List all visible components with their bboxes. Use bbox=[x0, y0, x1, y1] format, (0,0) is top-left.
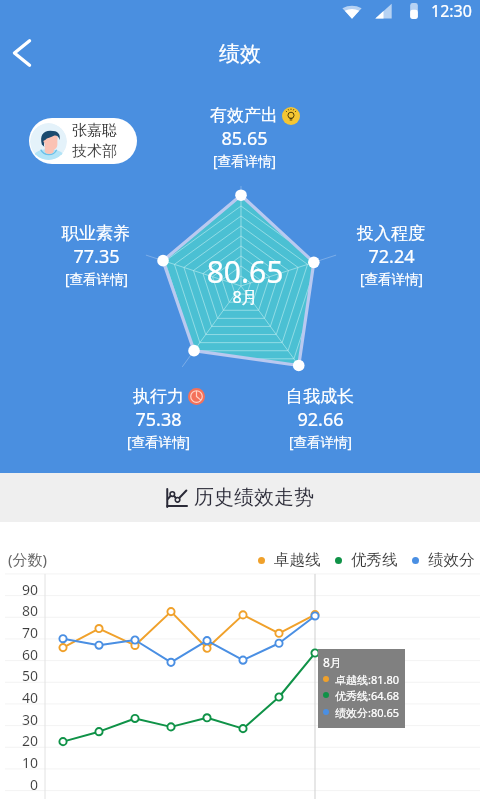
staticText: 自我成长 bbox=[286, 386, 354, 407]
staticText: 75.38 bbox=[135, 407, 182, 432]
button[interactable]: 卓越线 bbox=[258, 550, 321, 570]
staticText: 优秀线 bbox=[351, 550, 398, 570]
staticText: 历史绩效走势 bbox=[194, 485, 314, 510]
staticText: 0 bbox=[6, 775, 38, 794]
button[interactable]: 张嘉聪 bbox=[29, 118, 137, 164]
staticText: 12:30 bbox=[431, 0, 472, 22]
staticText: 技术部 bbox=[72, 142, 117, 161]
staticText: [查看详情] bbox=[213, 152, 276, 170]
staticText: 绩效 bbox=[219, 41, 261, 67]
staticText: 优秀线:64.68 bbox=[335, 688, 400, 702]
staticText: 50 bbox=[6, 666, 38, 685]
staticText: 8月 bbox=[145, 286, 345, 308]
button[interactable]: 投入程度 bbox=[321, 223, 461, 288]
staticText: 投入程度 bbox=[357, 223, 425, 244]
staticText: 60 bbox=[6, 645, 38, 664]
staticText: [查看详情] bbox=[289, 433, 352, 451]
staticText: 80 bbox=[6, 601, 38, 620]
staticText: 张嘉聪 bbox=[72, 121, 117, 140]
staticText: [查看详情] bbox=[360, 270, 423, 288]
staticText: 92.66 bbox=[297, 407, 344, 432]
staticText: 职业素养 bbox=[62, 223, 130, 244]
staticText: 90 bbox=[6, 580, 38, 599]
button[interactable]: 职业素养 bbox=[26, 223, 166, 288]
button[interactable]: 优秀线 bbox=[335, 550, 398, 570]
staticText: 10 bbox=[6, 753, 38, 772]
staticText: 80.65 bbox=[145, 251, 345, 292]
staticText: 执行力 bbox=[133, 386, 184, 407]
staticText: 85.65 bbox=[221, 126, 268, 151]
staticText: [查看详情] bbox=[127, 433, 190, 451]
button[interactable]: Back bbox=[0, 31, 44, 75]
staticText: 绩效分 bbox=[428, 550, 475, 570]
staticText: [查看详情] bbox=[65, 270, 128, 288]
staticText: 77.35 bbox=[73, 244, 120, 269]
staticText: (分数) bbox=[8, 549, 48, 569]
staticText: 20 bbox=[6, 731, 38, 750]
button[interactable]: 执行力 bbox=[88, 386, 228, 451]
staticText: 卓越线 bbox=[274, 550, 321, 570]
staticText: 绩效分:80.65 bbox=[335, 705, 400, 719]
button[interactable]: 自我成长 bbox=[250, 386, 390, 451]
staticText: 卓越线:81.80 bbox=[335, 672, 400, 686]
button[interactable]: 绩效分 bbox=[412, 550, 475, 570]
staticText: 30 bbox=[6, 710, 38, 729]
staticText: 40 bbox=[6, 688, 38, 707]
staticText: 70 bbox=[6, 623, 38, 642]
button[interactable]: 有效产出 bbox=[174, 105, 314, 170]
button[interactable]: 历史绩效走势 bbox=[166, 485, 314, 510]
staticText: 有效产出 bbox=[210, 105, 278, 126]
staticText: 72.24 bbox=[368, 244, 415, 269]
staticText: 8月 bbox=[323, 654, 342, 670]
